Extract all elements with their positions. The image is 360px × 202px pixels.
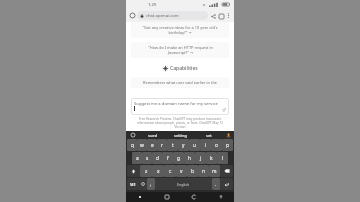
button[interactable]: Suggest me a domain name for my service (131, 98, 229, 115)
staticText: n (202, 168, 205, 175)
button[interactable]: u (189, 139, 200, 151)
button[interactable]: j (195, 152, 206, 164)
staticText: r (161, 142, 163, 149)
button[interactable]: Recents (126, 192, 153, 202)
button[interactable]: g (173, 152, 184, 164)
button[interactable]: a (132, 152, 142, 164)
button[interactable]: Space (155, 178, 212, 190)
staticText: o (215, 142, 218, 149)
button[interactable]: Share (209, 12, 217, 20)
staticText: "Got any creative ideas for a 10 year ol… (142, 25, 218, 35)
button[interactable]: t (167, 139, 178, 151)
staticText: l (222, 155, 224, 162)
button[interactable]: Reload (217, 12, 225, 20)
staticText: d (156, 155, 159, 162)
button[interactable]: Remembers what user said earlier in the (131, 77, 229, 88)
staticText: "How do I make an HTTP request in Javasc… (148, 45, 213, 55)
button[interactable]: . (212, 178, 220, 190)
button[interactable]: n (198, 165, 209, 177)
button[interactable]: , (147, 178, 155, 190)
staticText: y (182, 142, 185, 149)
button[interactable]: r (157, 139, 167, 151)
button[interactable]: "Got any creative ideas for a 10 year ol… (131, 22, 229, 38)
staticText: !#1 (130, 182, 136, 187)
button[interactable]: set (195, 131, 223, 139)
staticText: e (151, 142, 154, 149)
button[interactable]: d (152, 152, 162, 164)
button[interactable]: Settings (138, 178, 147, 190)
button[interactable]: y (178, 139, 189, 151)
staticText: . (215, 181, 217, 188)
staticText: Suggest me a domain name for my service (134, 101, 218, 107)
button[interactable]: c (164, 165, 176, 177)
button[interactable]: x (152, 165, 164, 177)
staticText: g (177, 155, 180, 162)
button[interactable]: setting (167, 131, 195, 139)
staticText: h (188, 155, 191, 162)
staticText: m (212, 168, 217, 175)
staticText: b (191, 168, 194, 175)
staticText: Free Research Preview. ChatGPT may produ… (131, 117, 229, 129)
staticText: , (150, 181, 152, 188)
staticText: f (167, 155, 169, 162)
button[interactable]: l (217, 152, 228, 164)
button[interactable]: v (176, 165, 187, 177)
staticText: setting (174, 133, 188, 138)
button[interactable]: Back (180, 192, 207, 202)
button[interactable]: s (142, 152, 152, 164)
button[interactable]: Hide keyboard (207, 192, 234, 202)
button[interactable]: Send message (221, 107, 227, 113)
staticText: set (206, 133, 212, 138)
staticText: p (226, 142, 229, 149)
staticText: Remembers what user said earlier in the (143, 80, 217, 85)
button[interactable]: e (147, 139, 157, 151)
staticText: a (136, 155, 139, 162)
button[interactable]: q (127, 139, 137, 151)
button[interactable]: More options (225, 12, 232, 19)
staticText: u (193, 142, 196, 149)
button[interactable]: Home (153, 192, 180, 202)
staticText: j (200, 155, 202, 162)
staticText: chat.openai.com (146, 13, 179, 19)
button[interactable]: m (209, 165, 220, 177)
staticText: q (131, 142, 134, 149)
button[interactable]: f (162, 152, 173, 164)
button[interactable]: Voice input (223, 131, 233, 139)
button[interactable]: k (206, 152, 217, 164)
staticText: v (180, 168, 183, 175)
button[interactable]: Tab switcher (128, 11, 137, 20)
button[interactable]: b (187, 165, 198, 177)
button[interactable]: Capabilities (163, 65, 198, 72)
button[interactable]: Backspace (220, 165, 233, 177)
button[interactable]: w (137, 139, 147, 151)
staticText: w (140, 142, 144, 149)
button[interactable]: p (222, 139, 233, 151)
staticText: s (146, 155, 149, 162)
staticText: x (157, 168, 160, 175)
button[interactable]: o (211, 139, 222, 151)
staticText: English (177, 182, 190, 187)
staticText: k (210, 155, 213, 162)
button[interactable]: Emoji (127, 131, 139, 139)
button[interactable]: i (200, 139, 211, 151)
staticText: z (145, 168, 148, 175)
staticText: Capabilities (170, 65, 198, 72)
button[interactable]: chat.openai.com (137, 11, 208, 20)
button[interactable]: Symbols (127, 178, 138, 190)
button[interactable]: "How do I make an HTTP request in Javasc… (131, 42, 229, 58)
button[interactable]: h (184, 152, 195, 164)
staticText: sued (148, 133, 158, 138)
button[interactable]: Shift (127, 165, 140, 177)
staticText: t (172, 142, 174, 149)
button[interactable]: sued (139, 131, 167, 139)
button[interactable]: Enter (220, 178, 233, 190)
staticText: c (169, 168, 172, 175)
staticText: i (205, 142, 207, 149)
staticText: 1:29 (148, 2, 156, 7)
button[interactable]: z (140, 165, 152, 177)
